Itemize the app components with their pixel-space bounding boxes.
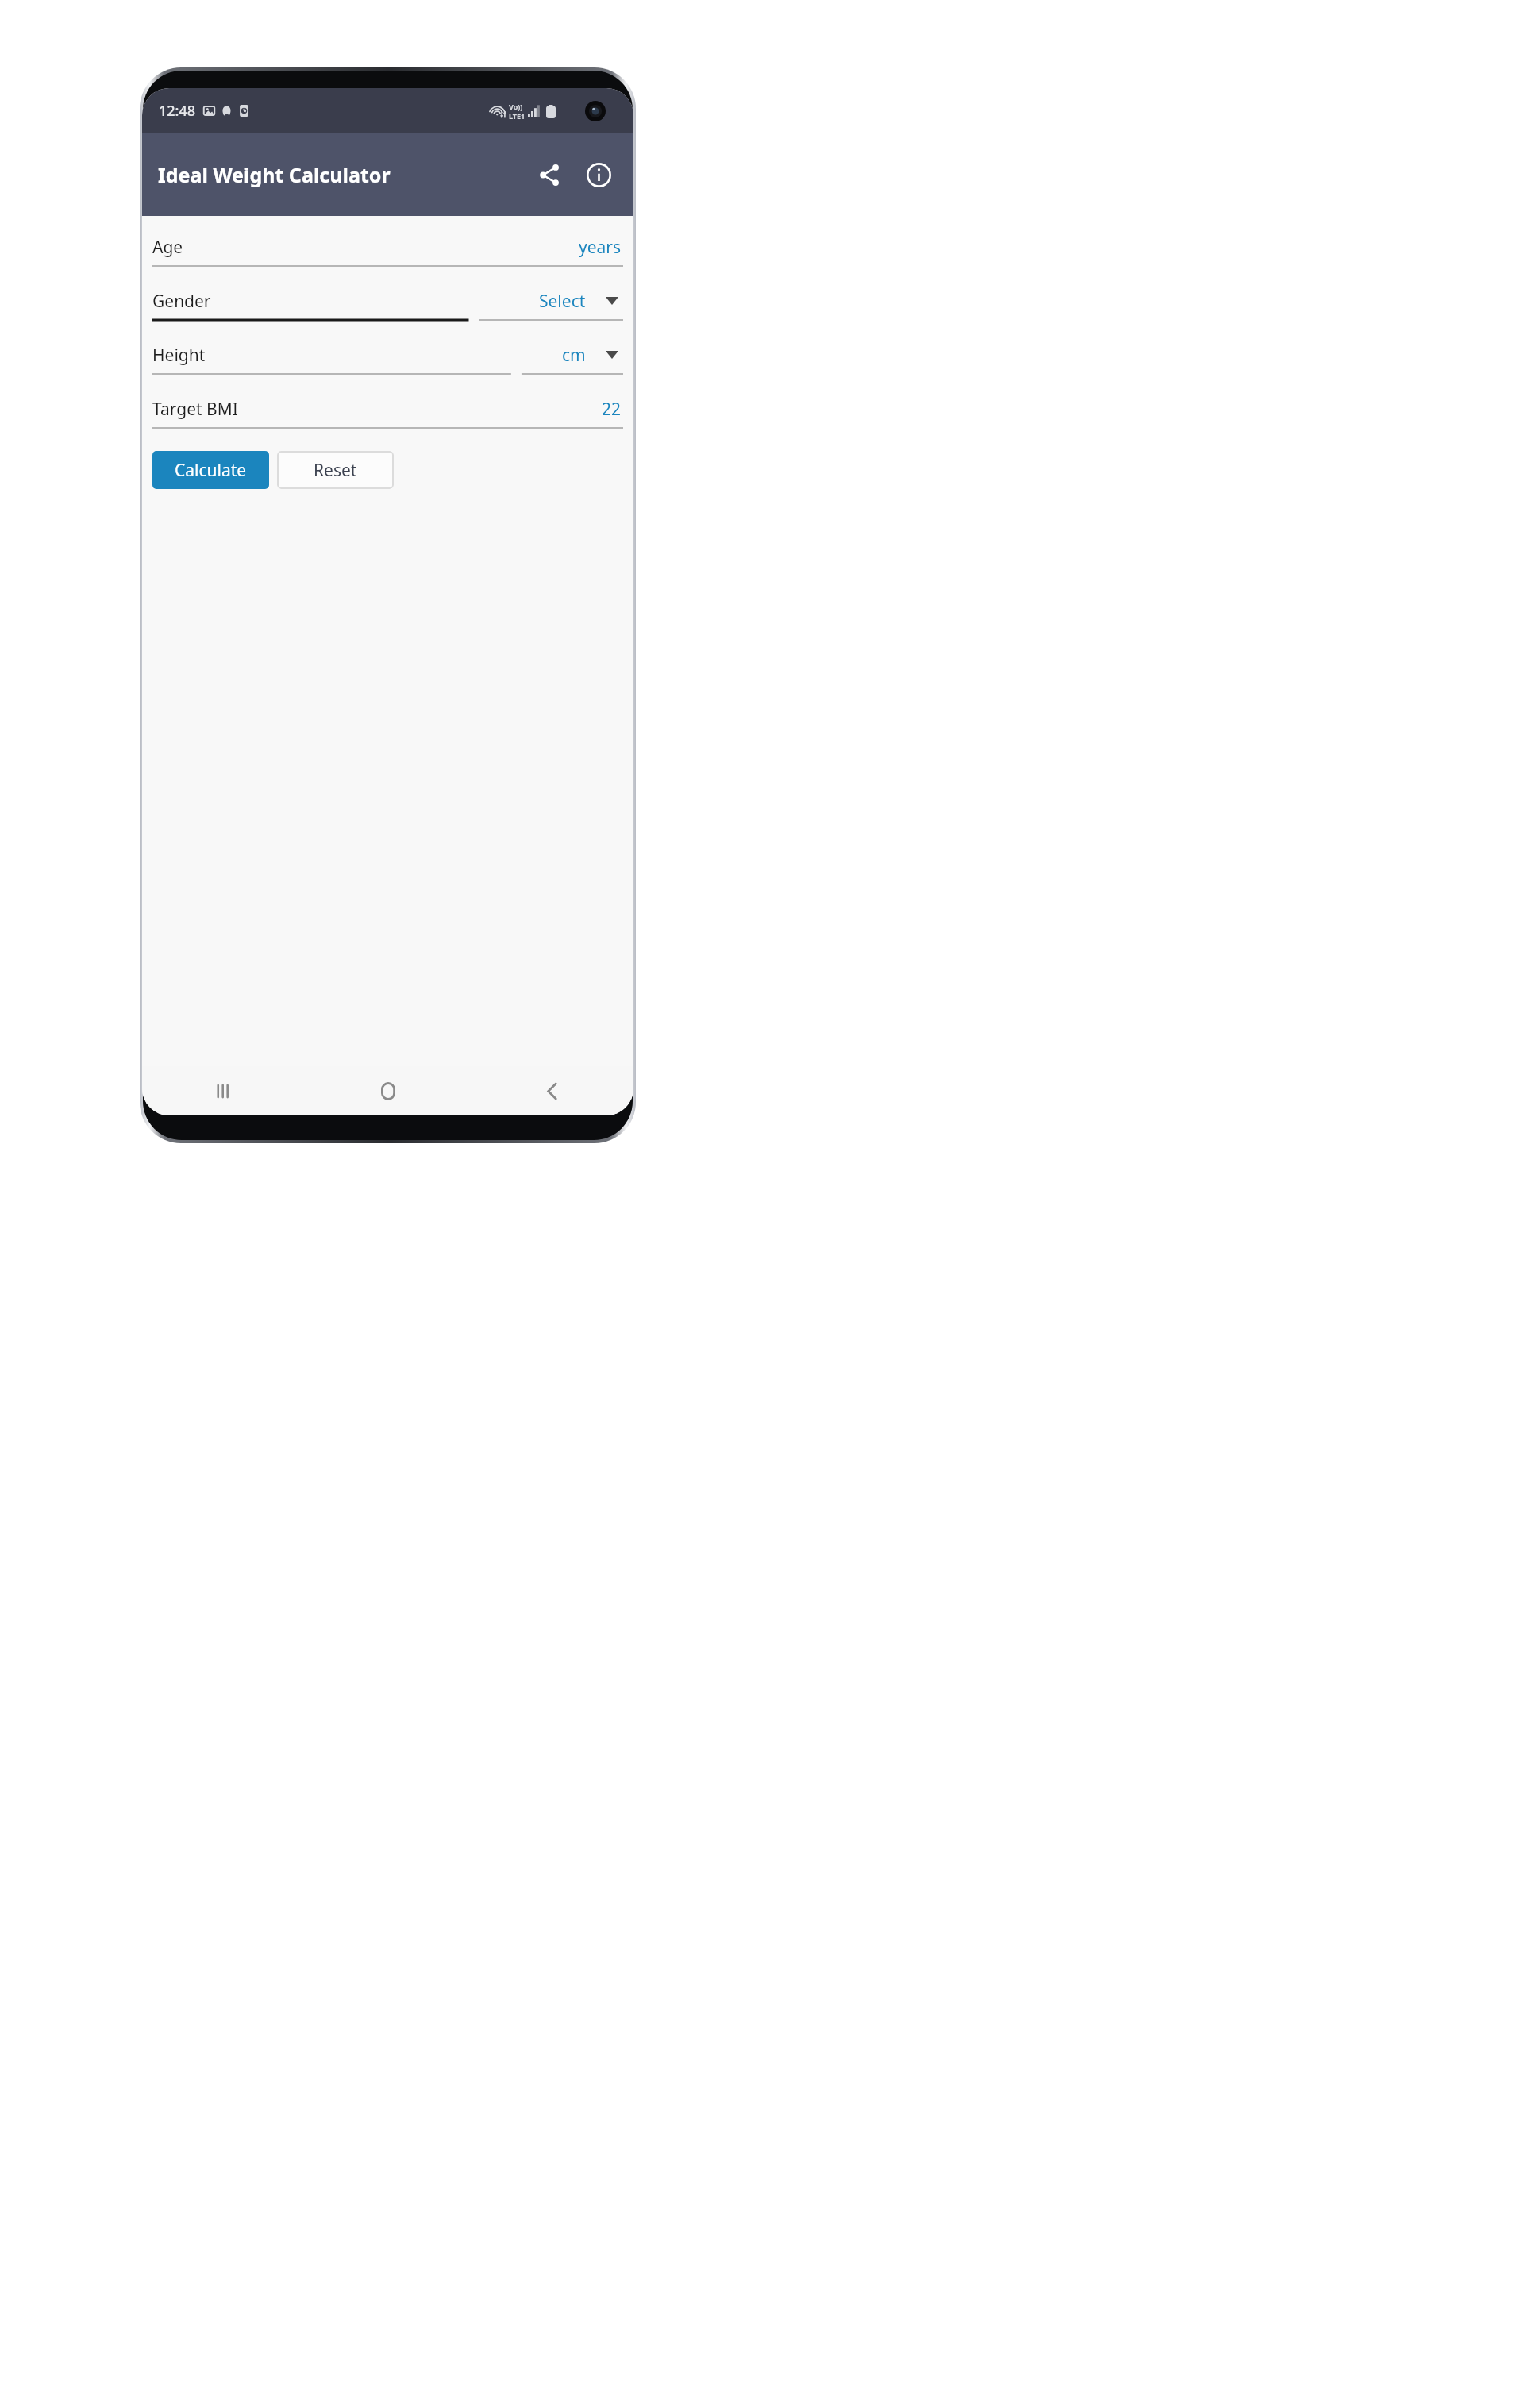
staticText: Age xyxy=(152,236,183,259)
staticText: Gender xyxy=(152,290,211,313)
staticText: 12:48 xyxy=(159,101,196,121)
button[interactable]: Share xyxy=(529,154,570,195)
button[interactable]: Reset xyxy=(277,451,394,489)
staticText: cm xyxy=(562,344,586,367)
staticText: Calculate xyxy=(175,459,247,482)
staticText: Target BMI xyxy=(152,398,238,421)
staticText: Height xyxy=(152,344,206,367)
button[interactable]: Back xyxy=(470,1066,633,1115)
staticText: years xyxy=(579,236,622,259)
button[interactable]: Gender xyxy=(152,283,623,318)
button[interactable]: Home xyxy=(306,1066,470,1115)
button[interactable]: Age xyxy=(152,229,623,264)
staticText: 22 xyxy=(602,398,622,421)
staticText: LTE1 xyxy=(509,111,526,121)
staticText: Ideal Weight Calculator xyxy=(158,161,391,188)
staticText: Vo)) xyxy=(509,102,523,111)
staticText: Select xyxy=(539,290,586,313)
staticText: Reset xyxy=(314,459,357,482)
button[interactable]: Info xyxy=(578,154,619,195)
button[interactable]: Calculate xyxy=(152,451,269,489)
button[interactable]: Target BMI xyxy=(152,391,623,426)
button[interactable]: Recent apps xyxy=(142,1066,306,1115)
button[interactable]: Height xyxy=(152,337,623,372)
